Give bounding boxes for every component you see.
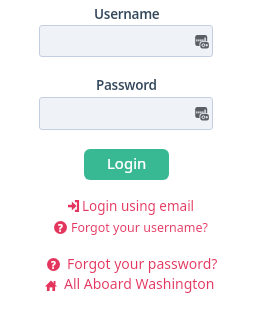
button[interactable]: Login [84, 149, 169, 180]
staticText: ? [58, 221, 63, 234]
staticText: ? [51, 258, 56, 271]
staticText: Forgot your username? [71, 219, 209, 236]
staticText: All Aboard Washington [64, 274, 215, 293]
staticText: Username [94, 5, 160, 23]
button[interactable]: ? [47, 254, 218, 273]
staticText: Password [96, 76, 157, 94]
button[interactable]: ? [54, 219, 209, 236]
staticText: Login using email [82, 197, 195, 215]
staticText: Forgot your password? [67, 254, 218, 273]
button[interactable]: Login using email [68, 197, 195, 215]
staticText: Login [107, 153, 147, 173]
button[interactable] [39, 97, 213, 130]
button[interactable]: All Aboard Washington [45, 274, 215, 293]
button[interactable] [39, 25, 213, 57]
